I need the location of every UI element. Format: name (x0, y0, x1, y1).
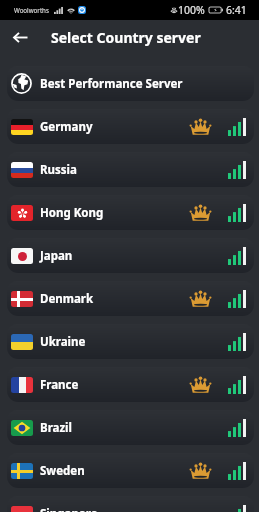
button[interactable]: Back (0, 20, 40, 54)
button[interactable]: Ukraine (7, 324, 254, 359)
staticText: Ukraine (40, 334, 86, 350)
button[interactable]: France (7, 367, 254, 402)
staticText: 100% (178, 3, 205, 17)
staticText: Russia (40, 162, 77, 178)
button[interactable]: Best Performance Server (7, 66, 254, 101)
button[interactable]: Japan (7, 238, 254, 273)
button[interactable]: Denmark (7, 281, 254, 316)
button[interactable]: Sweden (7, 453, 254, 488)
staticText: France (40, 377, 79, 393)
button[interactable]: Singapore (7, 496, 254, 512)
staticText: Sweden (40, 463, 85, 479)
staticText: Best Performance Server (40, 76, 183, 92)
button[interactable]: Germany (7, 109, 254, 144)
button[interactable]: Hong Kong (7, 195, 254, 230)
staticText: Select Country server (51, 28, 201, 47)
staticText: Germany (40, 119, 93, 135)
staticText: Japan (40, 248, 73, 264)
staticText: Woolworths (14, 6, 49, 14)
staticText: Brazil (40, 420, 72, 436)
button[interactable]: Russia (7, 152, 254, 187)
staticText: Hong Kong (40, 205, 104, 221)
staticText: Singapore (40, 506, 98, 512)
staticText: 6:41 (226, 3, 247, 17)
button[interactable]: Brazil (7, 410, 254, 445)
staticText: Denmark (40, 291, 94, 307)
